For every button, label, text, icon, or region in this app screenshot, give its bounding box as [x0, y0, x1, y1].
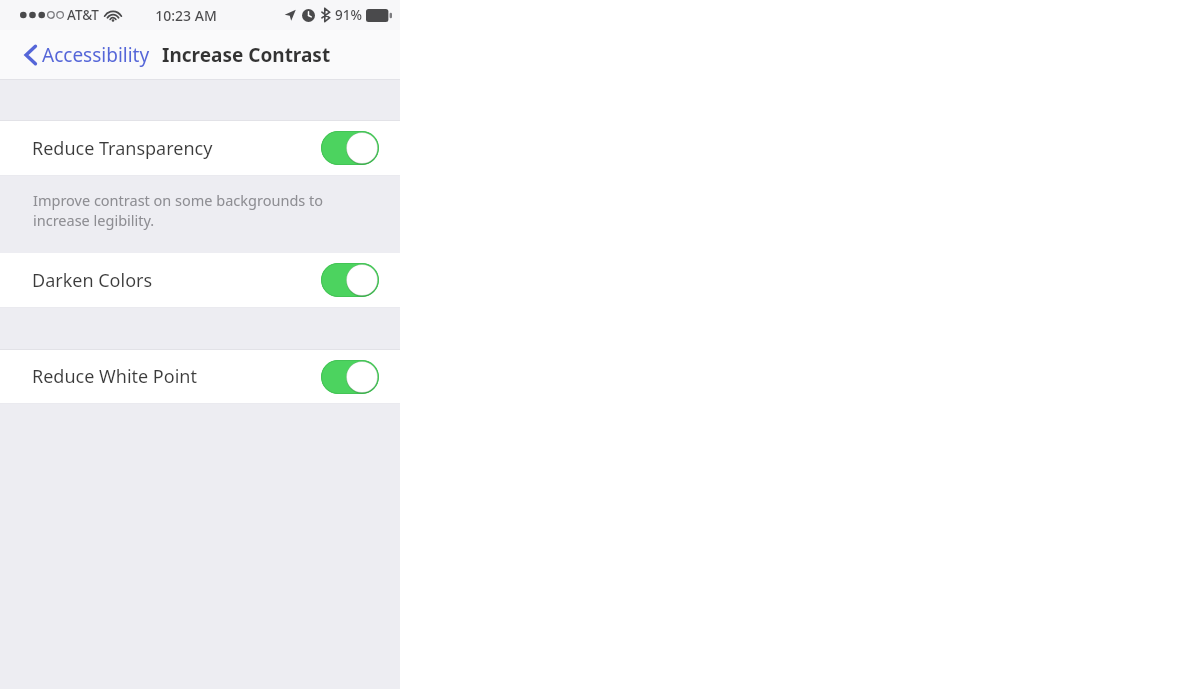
staticText: Reduce Transparency	[32, 136, 213, 161]
button[interactable]: Toggle on	[321, 131, 379, 165]
button[interactable]: Toggle on	[321, 263, 379, 297]
staticText: 91%	[335, 6, 362, 24]
button[interactable]: Toggle on	[321, 360, 379, 394]
staticText: 10:23 AM	[155, 6, 217, 25]
staticText: Darken Colors	[32, 268, 153, 293]
staticText: Accessibility	[42, 42, 150, 68]
staticText: Reduce White Point	[32, 364, 197, 389]
button[interactable]: Darken Colors	[0, 253, 400, 307]
button[interactable]: Reduce White Point	[0, 350, 400, 403]
button[interactable]: Back to Accessibility	[20, 38, 154, 72]
button[interactable]: Reduce Transparency	[0, 121, 400, 175]
staticText: Improve contrast on some backgrounds to …	[33, 190, 324, 230]
staticText: AT&T	[67, 6, 99, 24]
staticText: Increase Contrast	[162, 42, 331, 68]
